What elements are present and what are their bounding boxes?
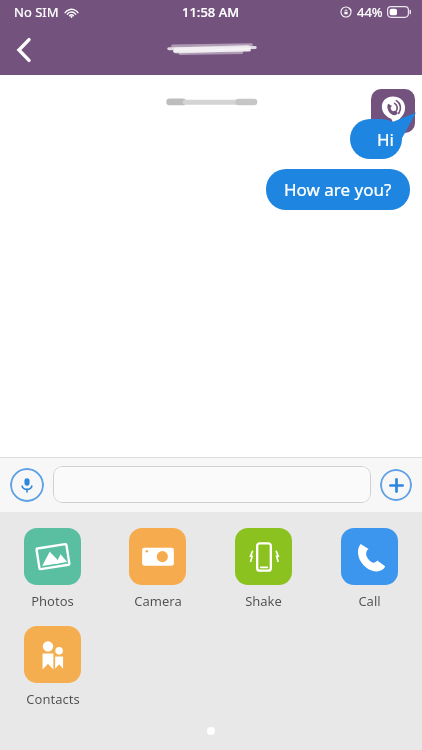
button[interactable]: How are you? bbox=[266, 169, 410, 210]
button[interactable]: Call bbox=[337, 528, 402, 610]
button[interactable]: Camera bbox=[125, 528, 190, 610]
button[interactable]: Message input bbox=[53, 466, 371, 503]
staticText: How are you? bbox=[284, 178, 392, 201]
staticText: 11:58 AM bbox=[182, 3, 240, 21]
staticText: Photos bbox=[31, 592, 74, 610]
button[interactable]: Voice message bbox=[10, 468, 44, 502]
staticText: Contacts bbox=[26, 690, 80, 708]
staticText: Camera bbox=[134, 592, 182, 610]
button[interactable]: Contact avatar bbox=[371, 89, 415, 133]
staticText: No SIM bbox=[14, 3, 59, 21]
staticText: 44% bbox=[357, 3, 383, 21]
button[interactable]: Photos bbox=[20, 528, 85, 610]
staticText: Hi bbox=[377, 128, 394, 151]
button[interactable]: Add attachment bbox=[380, 469, 412, 501]
button[interactable]: Shake bbox=[231, 528, 296, 610]
staticText: Shake bbox=[245, 592, 282, 610]
staticText: Call bbox=[358, 592, 381, 610]
button[interactable]: Contacts bbox=[20, 626, 85, 708]
button[interactable]: Back bbox=[0, 26, 48, 74]
